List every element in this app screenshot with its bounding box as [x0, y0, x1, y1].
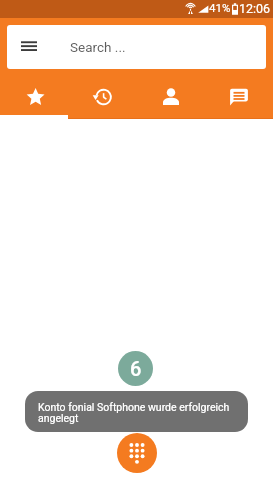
button[interactable]: Open navigation menu	[21, 40, 37, 56]
staticText: 12:06	[239, 1, 271, 16]
button[interactable]: Open navigation menu	[7, 25, 266, 69]
staticText: Search ...	[70, 39, 126, 55]
button[interactable]: Call history	[69, 70, 137, 118]
button[interactable]: Favourites	[0, 70, 69, 118]
staticText: 41%	[209, 1, 231, 14]
staticText: 6	[130, 357, 142, 380]
button[interactable]: 6	[118, 351, 153, 386]
button[interactable]: Open dialpad	[117, 433, 157, 473]
button[interactable]: Messages	[205, 70, 273, 118]
button[interactable]: Contacts	[137, 70, 205, 118]
staticText: Konto fonial Softphone wurde erfolgreich…	[38, 401, 238, 425]
